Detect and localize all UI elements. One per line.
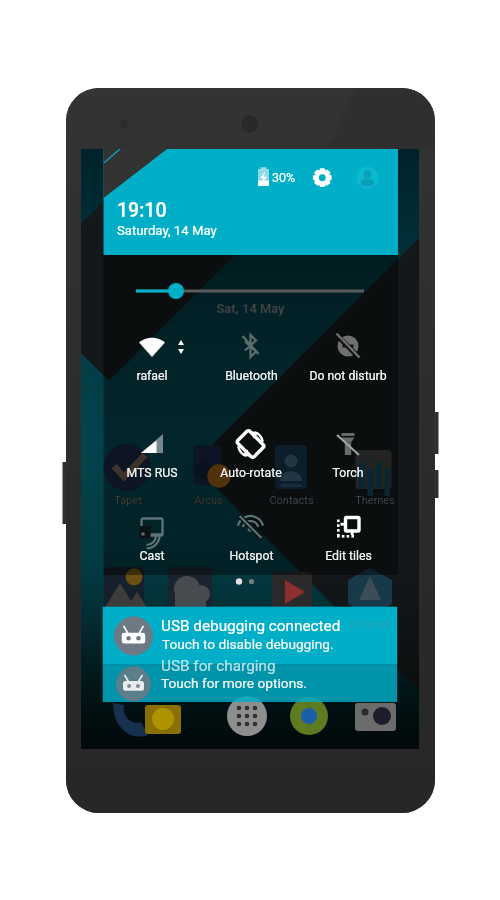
button[interactable]: Settings [304, 160, 340, 196]
staticText: Bluetooth [225, 369, 278, 383]
button[interactable]: Wi-Fi rafael [104, 322, 202, 388]
staticText: 19:10 [117, 199, 167, 222]
button[interactable]: Bluetooth [202, 322, 300, 388]
staticText: Edit tiles [325, 549, 372, 563]
button[interactable]: Cast [104, 503, 202, 567]
button[interactable]: User profile [353, 159, 389, 195]
staticText: Contacts [269, 494, 314, 507]
staticText: rafael [136, 369, 168, 383]
button[interactable]: MTS RUS [104, 420, 202, 486]
staticText: Hotspot [229, 549, 274, 563]
staticText: Polycon [350, 617, 391, 630]
staticText: Sat, 14 May [216, 301, 285, 316]
staticText: Auto-rotate [220, 466, 282, 480]
staticText: USB debugging connected [161, 617, 341, 635]
staticText: Touch for more options. [161, 675, 307, 691]
staticText: MTS RUS [126, 466, 178, 480]
staticText: Tapet [114, 494, 142, 507]
button[interactable]: Torch [300, 420, 398, 486]
staticText: 30% [272, 170, 296, 185]
button[interactable]: USB debugging connected [103, 607, 398, 665]
staticText: Do not disturb [309, 369, 387, 383]
staticText: Torch [332, 466, 364, 480]
button[interactable]: Auto-rotate [202, 420, 300, 486]
button[interactable]: Hotspot [202, 503, 300, 567]
button[interactable]: Do not disturb [300, 322, 398, 388]
staticText: Arcus [194, 494, 223, 507]
button[interactable]: USB for charging [103, 665, 398, 702]
staticText: Cast [139, 549, 165, 563]
staticText: USB for charging [161, 657, 276, 675]
staticText: Saturday, 14 May [117, 223, 217, 238]
staticText: Touch to disable debugging. [162, 636, 334, 652]
staticText: Themes [355, 494, 395, 507]
button[interactable]: Edit tiles [300, 503, 398, 567]
